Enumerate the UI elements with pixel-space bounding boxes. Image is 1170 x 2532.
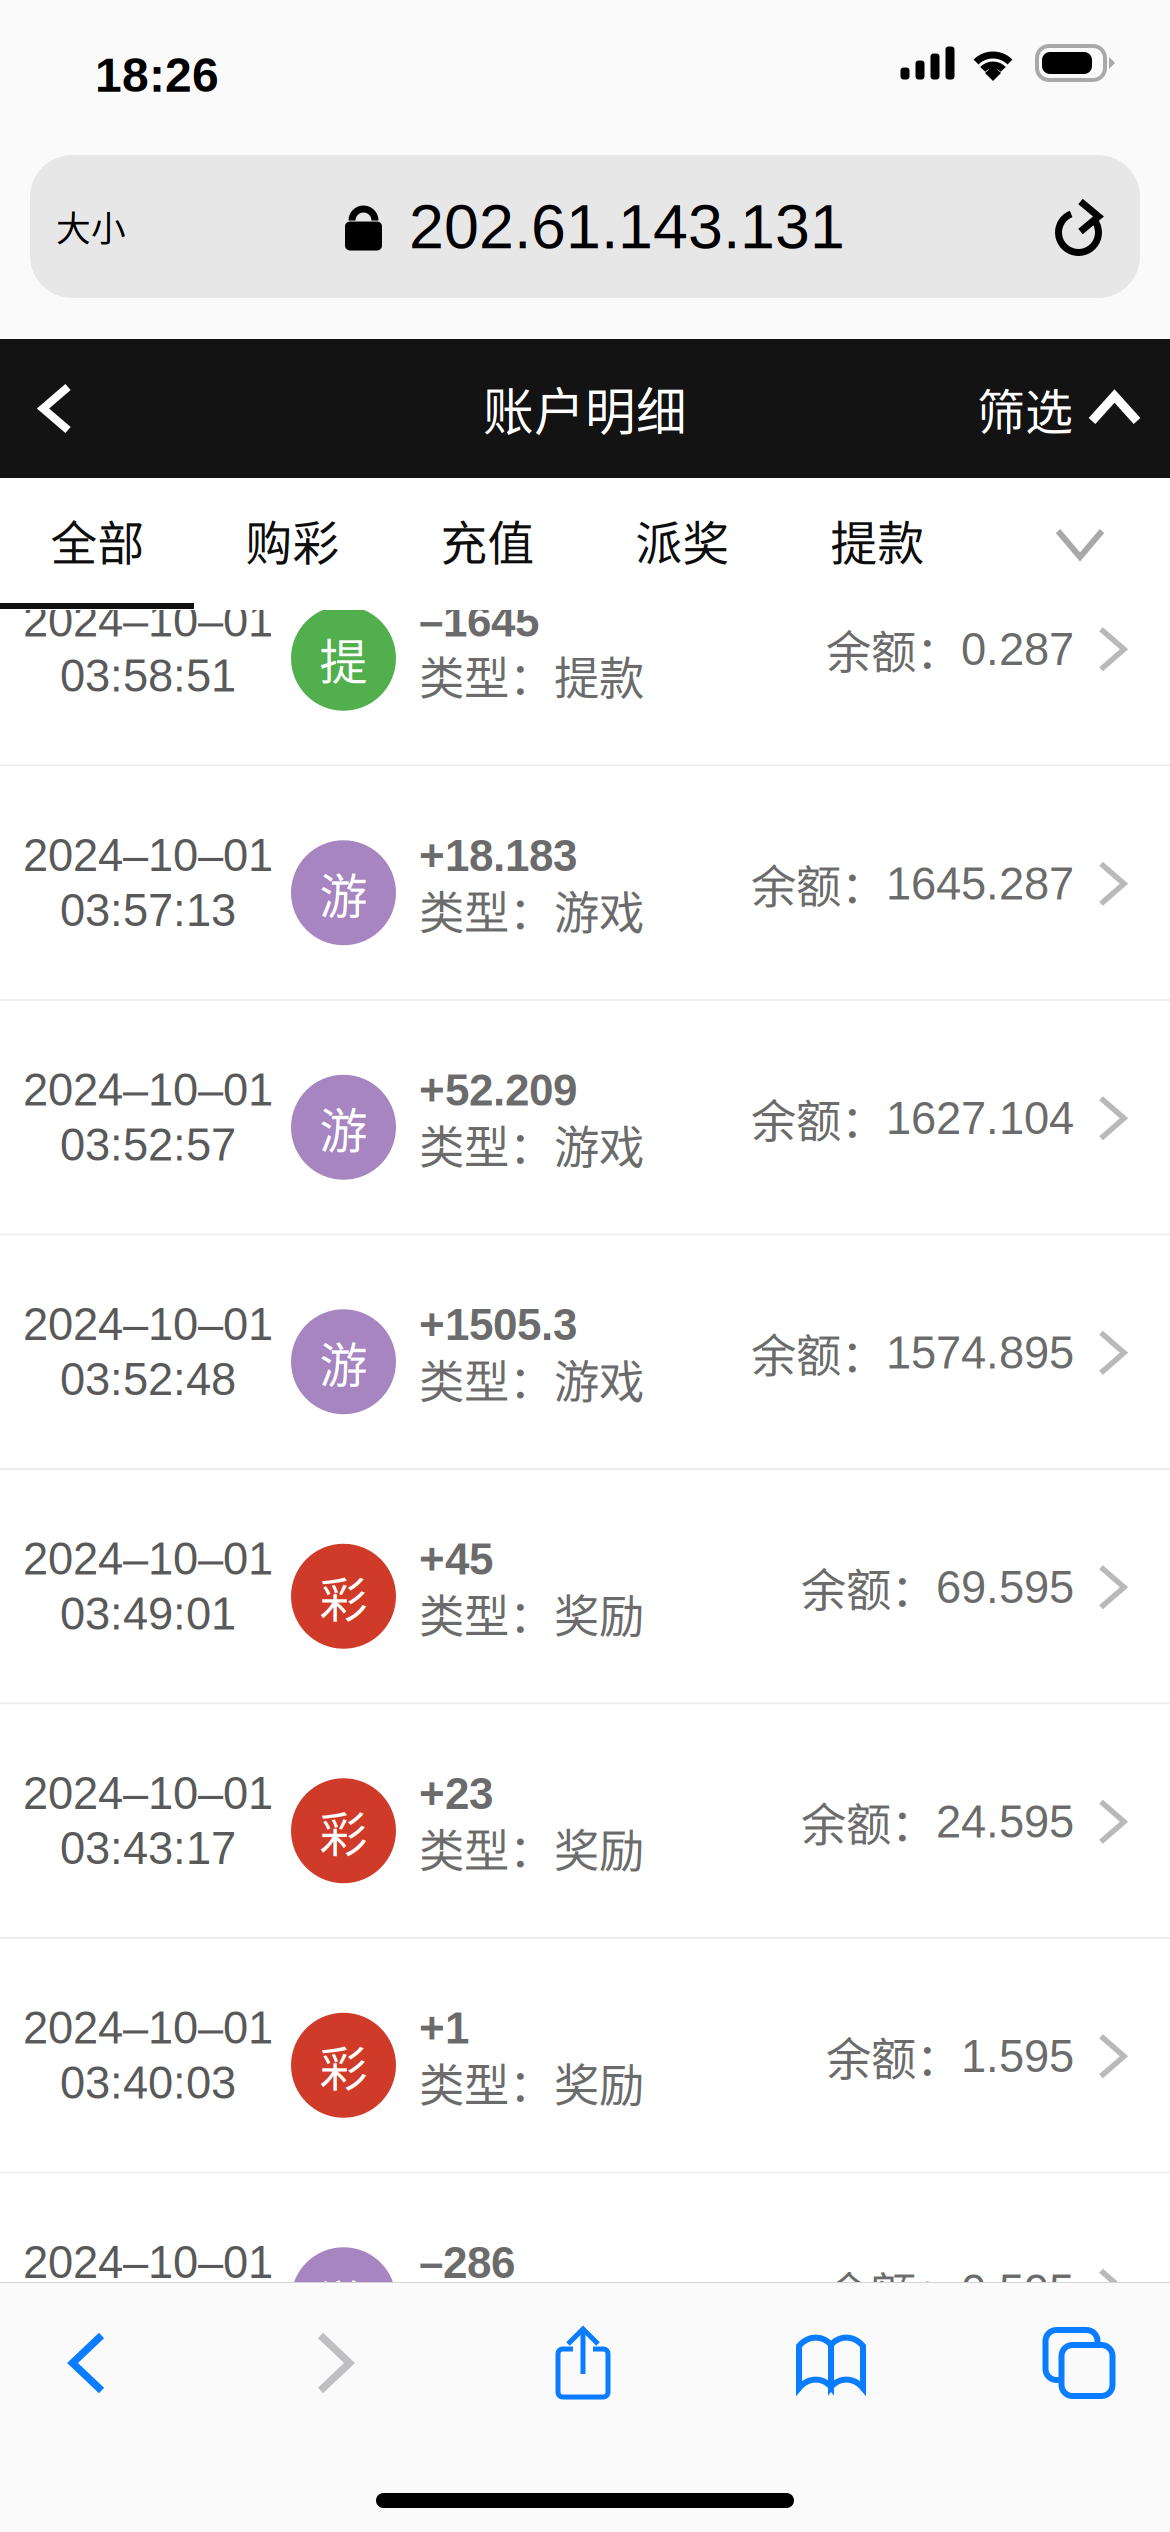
staticText: 1627.104	[886, 1093, 1074, 1143]
staticText: 提款	[830, 506, 924, 574]
staticText: 余额：	[751, 1085, 886, 1151]
button[interactable]: 大小	[30, 155, 230, 298]
staticText: 03:58:51	[60, 650, 236, 701]
staticText: 购彩	[245, 506, 339, 574]
button[interactable]: 2024–10–01	[0, 1235, 1170, 1470]
button[interactable]: Bookmarks	[744, 2297, 918, 2429]
button[interactable]: Back	[0, 339, 160, 478]
staticText: 03:57:13	[60, 885, 236, 935]
staticText: 全部	[50, 506, 144, 574]
staticText: 2024–10–01	[23, 1064, 273, 1115]
staticText: 彩	[319, 2030, 367, 2100]
staticText: 余额：	[826, 616, 961, 682]
staticText: 筛选	[977, 374, 1073, 443]
staticText: –286	[419, 2238, 515, 2287]
staticText: 类型：游戏	[419, 1346, 644, 1411]
button[interactable]: 2024–10–01	[0, 1704, 1170, 1939]
staticText: 游	[319, 1327, 367, 1396]
staticText: 03:39:11	[61, 2292, 235, 2342]
staticText: 03:49:01	[60, 1588, 236, 1639]
button[interactable]: 2024–10–01	[0, 766, 1170, 1001]
button[interactable]: 2024–10–01	[0, 1001, 1170, 1235]
staticText: 类型：奖励	[419, 1815, 644, 1880]
staticText: 账户明细	[483, 372, 687, 445]
staticText: 类型：奖励	[419, 2049, 644, 2115]
staticText: 03:43:17	[60, 1823, 236, 1873]
staticText: 2024–10–01	[23, 1768, 273, 1818]
staticText: 游	[319, 2265, 367, 2334]
staticText: +45	[419, 1535, 493, 1584]
staticText: 派奖	[635, 506, 729, 574]
staticText: +1	[419, 2004, 469, 2053]
staticText: 1.595	[961, 2031, 1074, 2081]
staticText: 充值	[440, 506, 534, 574]
button[interactable]: 2024–10–01	[0, 1470, 1170, 1704]
button[interactable]: Forward	[248, 2297, 422, 2429]
staticText: 0.595	[961, 2265, 1074, 2316]
button[interactable]: More filters	[1005, 478, 1155, 610]
staticText: 游	[319, 1092, 367, 1162]
staticText: +23	[419, 1769, 493, 1818]
staticText: 1574.895	[886, 1327, 1074, 1378]
button[interactable]: 2024–10–01	[0, 1939, 1170, 2173]
staticText: 余额：	[801, 1554, 936, 1620]
staticText: 202.61.143.131	[409, 191, 845, 261]
staticText: 提	[319, 623, 367, 693]
button[interactable]: Reload	[1020, 155, 1140, 298]
button[interactable]: 全部	[0, 478, 195, 610]
staticText: +1505.3	[419, 1300, 577, 1349]
staticText: 类型：奖励	[419, 1580, 644, 1646]
staticText: 余额：	[801, 1789, 936, 1854]
button[interactable]: 充值	[390, 478, 585, 610]
staticText: 类型：游戏	[419, 2284, 644, 2349]
staticText: 18:26	[95, 48, 219, 102]
staticText: 类型：游戏	[419, 1111, 644, 1177]
staticText: 余额：	[751, 851, 886, 916]
staticText: 类型：提款	[419, 642, 644, 708]
staticText: 03:52:48	[60, 1354, 236, 1404]
staticText: 2024–10–01	[23, 2237, 273, 2287]
staticText: –1645	[419, 597, 539, 646]
staticText: +18.183	[419, 831, 577, 880]
staticText: 余额：	[751, 1320, 886, 1385]
button[interactable]: 提款	[780, 478, 975, 610]
button[interactable]: 2024–10–01	[0, 532, 1170, 766]
staticText: 彩	[319, 1796, 367, 1865]
button[interactable]: Back	[0, 2297, 174, 2429]
staticText: 24.595	[936, 1796, 1074, 1847]
staticText: 游	[319, 858, 367, 927]
staticText: 余额：	[826, 2023, 961, 2089]
button[interactable]: 筛选	[977, 339, 1170, 478]
staticText: 03:52:57	[60, 1119, 236, 1170]
staticText: +52.209	[419, 1066, 577, 1115]
staticText: 2024–10–01	[23, 595, 273, 646]
staticText: 类型：游戏	[419, 877, 644, 942]
staticText: 1645.287	[886, 858, 1074, 909]
staticText: 彩	[319, 1561, 367, 1631]
button[interactable]: 购彩	[195, 478, 390, 610]
staticText: 余额：	[826, 2258, 961, 2323]
button[interactable]: 派奖	[585, 478, 780, 610]
button[interactable]: Share	[496, 2297, 670, 2429]
staticText: 0.287	[961, 624, 1074, 674]
staticText: 03:40:03	[60, 2057, 236, 2108]
staticText: 2024–10–01	[23, 2002, 273, 2053]
button[interactable]: Tabs	[992, 2297, 1166, 2429]
staticText: 2024–10–01	[23, 830, 273, 880]
staticText: 大小	[56, 201, 126, 252]
staticText: 69.595	[936, 1562, 1074, 1612]
staticText: 2024–10–01	[23, 1299, 273, 1349]
staticText: 2024–10–01	[23, 1533, 273, 1584]
button[interactable]: 2024–10–01	[0, 2173, 1170, 2408]
